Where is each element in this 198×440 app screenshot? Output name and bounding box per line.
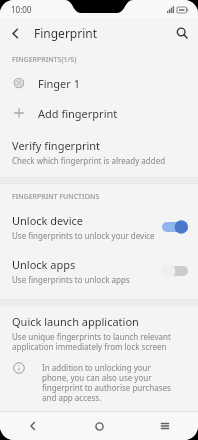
staticText: Use unique fingerprints to launch releva…: [12, 331, 184, 352]
staticText: Use fingerprints to unlock apps: [12, 274, 130, 285]
button[interactable]: Unlock apps: [0, 249, 198, 293]
staticText: Unlock device: [12, 213, 84, 228]
staticText: FINGERPRINT FUNCTIONS: [12, 192, 100, 202]
staticText: Quick launch application: [12, 314, 139, 329]
button[interactable]: Back: [0, 412, 66, 440]
staticText: Unlock apps: [12, 257, 76, 272]
button[interactable]: Unlock device: [0, 205, 198, 249]
staticText: Verify fingerprint: [12, 138, 101, 153]
button[interactable]: Add fingerprint: [0, 98, 198, 128]
staticText: Finger 1: [38, 76, 81, 91]
button[interactable]: Finger 1: [0, 68, 198, 98]
staticText: Use fingerprints to unlock your device: [12, 230, 155, 241]
staticText: 10:00: [11, 4, 32, 15]
button[interactable]: Recent apps: [132, 412, 198, 440]
staticText: In addition to unlocking your phone, you…: [42, 362, 178, 403]
button[interactable]: Unlock apps: [162, 264, 188, 278]
staticText: Check which fingerprint is already added: [12, 155, 166, 166]
button[interactable]: Search: [166, 18, 198, 48]
button[interactable]: Home: [66, 412, 132, 440]
button[interactable]: Quick launch application: [0, 314, 198, 352]
button[interactable]: Unlock device: [162, 220, 188, 234]
staticText: Fingerprint: [34, 25, 98, 41]
button[interactable]: Verify fingerprint: [0, 138, 198, 170]
staticText: Add fingerprint: [38, 106, 118, 121]
staticText: FINGERPRINTS(1/5): [12, 55, 77, 65]
button[interactable]: Back: [0, 18, 30, 48]
